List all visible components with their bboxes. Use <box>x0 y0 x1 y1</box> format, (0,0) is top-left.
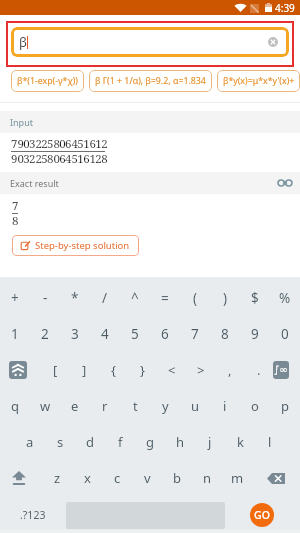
button[interactable]: β*y(x)=μ*x*y'(x)+ <box>217 70 300 92</box>
button[interactable]: w <box>30 388 60 424</box>
staticText: 7 <box>191 325 199 343</box>
staticText: + <box>11 289 19 307</box>
button[interactable]: ^ <box>120 280 150 316</box>
button[interactable]: .?123 <box>0 496 66 533</box>
staticText: Step-by-step solution <box>35 239 130 252</box>
button[interactable]: t <box>120 388 150 424</box>
button[interactable]: q <box>0 388 30 424</box>
button[interactable]: p <box>270 388 300 424</box>
staticText: / <box>102 289 108 307</box>
staticText: , <box>228 361 232 379</box>
button[interactable]: > <box>186 352 215 388</box>
button[interactable]: Math symbols <box>273 352 289 388</box>
button[interactable]: } <box>128 352 157 388</box>
staticText: 9 <box>251 325 259 343</box>
staticText: GO <box>254 508 270 522</box>
staticText: [ <box>53 361 58 379</box>
button[interactable]: c <box>102 460 132 496</box>
button[interactable]: / <box>90 280 120 316</box>
button[interactable]: a <box>15 424 45 460</box>
button[interactable]: + <box>0 280 30 316</box>
staticText: ∫∞ <box>274 364 288 376</box>
button[interactable]: i <box>210 388 240 424</box>
button[interactable]: d <box>75 424 105 460</box>
button[interactable]: Shift <box>0 460 38 496</box>
button[interactable]: e <box>60 388 90 424</box>
button[interactable]: o <box>240 388 270 424</box>
button[interactable]: r <box>90 388 120 424</box>
button[interactable]: ( <box>180 280 210 316</box>
button[interactable]: 3 <box>60 316 90 352</box>
button[interactable]: { <box>99 352 128 388</box>
staticText: β Γ(1 + 1/α), β=9.2, α=1.834 <box>95 75 206 87</box>
button[interactable]: y <box>150 388 180 424</box>
button[interactable]: v <box>132 460 162 496</box>
button[interactable]: 2 <box>30 316 60 352</box>
button[interactable]: β <box>11 27 289 57</box>
staticText: 8 <box>221 325 229 343</box>
button[interactable]: n <box>192 460 222 496</box>
staticText: o <box>251 397 259 415</box>
staticText: β*(1-exp(-γ*χ)) <box>17 75 78 87</box>
staticText: ] <box>82 361 87 379</box>
button[interactable]: ] <box>70 352 99 388</box>
button[interactable]: β Γ(1 + 1/α), β=9.2, α=1.834 <box>89 70 212 92</box>
button[interactable]: k <box>225 424 255 460</box>
button[interactable]: [ <box>41 352 70 388</box>
button[interactable]: ) <box>210 280 240 316</box>
staticText: ( <box>193 289 198 307</box>
staticText: 2 <box>41 325 49 343</box>
button[interactable]: Backspace <box>252 460 300 496</box>
button[interactable]: 9 <box>240 316 270 352</box>
staticText: β <box>19 33 27 51</box>
staticText: . <box>257 361 261 379</box>
button[interactable]: 0 <box>270 316 300 352</box>
staticText: $ <box>251 289 259 307</box>
button[interactable]: j <box>195 424 225 460</box>
button[interactable]: More symbols <box>0 352 36 388</box>
staticText: u <box>191 397 200 415</box>
button[interactable]: s <box>45 424 75 460</box>
button[interactable]: 7 <box>180 316 210 352</box>
button[interactable]: Step-by-step solution <box>12 235 139 256</box>
staticText: < <box>168 361 176 379</box>
staticText: % <box>279 289 291 307</box>
button[interactable]: g <box>135 424 165 460</box>
button[interactable]: . <box>244 352 273 388</box>
button[interactable]: = <box>150 280 180 316</box>
button[interactable]: , <box>215 352 244 388</box>
staticText: e <box>71 397 79 415</box>
button[interactable]: l <box>255 424 285 460</box>
button[interactable]: 6 <box>150 316 180 352</box>
staticText: - <box>43 289 48 307</box>
button[interactable]: * <box>60 280 90 316</box>
button[interactable]: m <box>222 460 252 496</box>
button[interactable]: $ <box>240 280 270 316</box>
button[interactable]: < <box>157 352 186 388</box>
button[interactable]: GO <box>250 503 274 527</box>
button[interactable]: - <box>30 280 60 316</box>
button[interactable]: % <box>270 280 300 316</box>
staticText: 7 <box>12 198 19 214</box>
button[interactable]: z <box>42 460 72 496</box>
staticText: g <box>146 433 154 451</box>
staticText: p <box>281 397 289 415</box>
button[interactable]: 8 <box>210 316 240 352</box>
button[interactable]: x <box>72 460 102 496</box>
button[interactable]: 5 <box>120 316 150 352</box>
button[interactable]: u <box>180 388 210 424</box>
staticText: y <box>162 397 169 415</box>
button[interactable]: Clear <box>268 37 278 47</box>
button[interactable]: 4 <box>90 316 120 352</box>
button[interactable]: b <box>162 460 192 496</box>
button[interactable]: 1 <box>0 316 30 352</box>
button[interactable]: Copy link <box>278 178 292 188</box>
staticText: Exact result <box>10 177 59 189</box>
button[interactable]: β*(1-exp(-γ*χ)) <box>11 70 84 92</box>
staticText: w <box>40 397 51 415</box>
button[interactable]: f <box>105 424 135 460</box>
button[interactable]: h <box>165 424 195 460</box>
staticText: v <box>144 469 151 487</box>
staticText: = <box>161 289 169 307</box>
